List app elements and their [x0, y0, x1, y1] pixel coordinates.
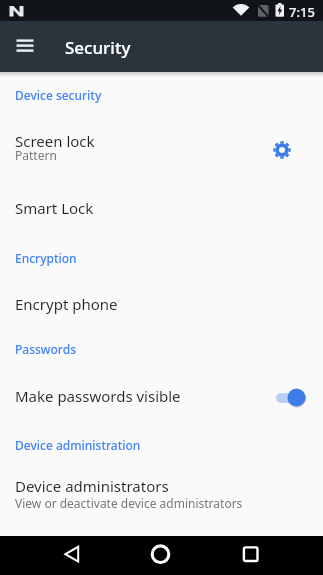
staticText: Passwords — [15, 341, 76, 357]
button[interactable] — [144, 539, 177, 572]
button[interactable] — [0, 184, 323, 232]
staticText: 7:15 — [289, 3, 315, 21]
button[interactable] — [8, 33, 44, 69]
staticText: Security — [65, 36, 131, 59]
button[interactable] — [0, 278, 323, 326]
staticText: Pattern — [15, 147, 57, 163]
button[interactable] — [268, 136, 296, 164]
button[interactable] — [274, 386, 310, 410]
staticText: View or deactivate device administrators — [15, 495, 243, 511]
staticText: Device administrators — [15, 476, 169, 496]
staticText: Encryption — [15, 250, 77, 266]
button[interactable] — [56, 539, 89, 572]
button[interactable] — [0, 372, 323, 420]
staticText: Smart Lock — [15, 198, 94, 218]
button[interactable] — [0, 466, 323, 528]
staticText: Encrypt phone — [15, 294, 118, 314]
staticText: Device administration — [15, 437, 141, 453]
staticText: Make passwords visible — [15, 386, 181, 406]
staticText: Screen lock — [15, 131, 95, 151]
staticText: Device security — [15, 87, 102, 103]
button[interactable] — [0, 118, 323, 180]
button[interactable] — [234, 539, 267, 572]
